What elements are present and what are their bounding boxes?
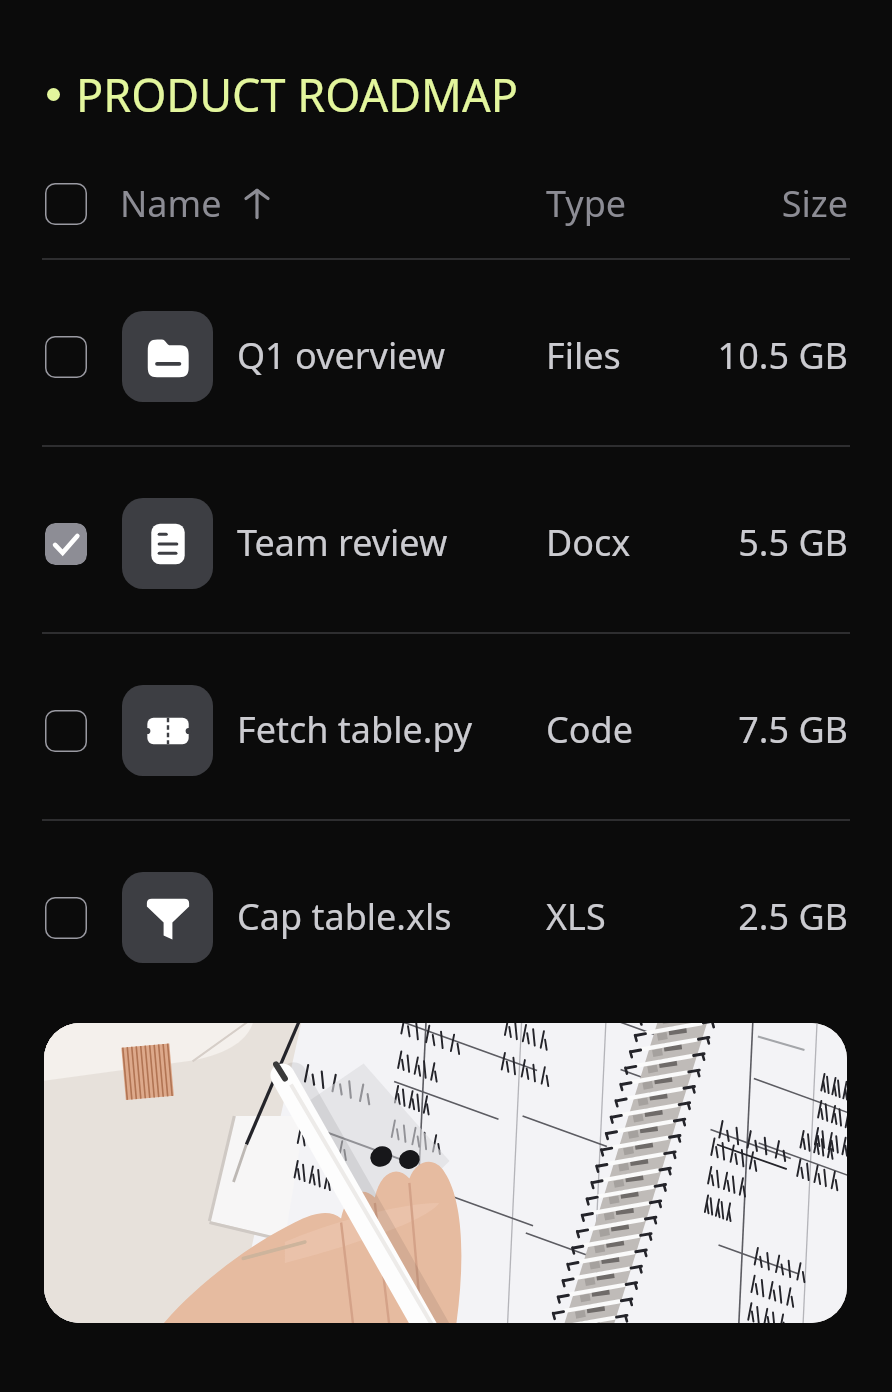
staticText: 7.5 GB bbox=[738, 705, 848, 754]
button[interactable]: Select bbox=[45, 897, 87, 939]
button[interactable]: Selected bbox=[45, 523, 87, 565]
button[interactable]: Size bbox=[781, 179, 848, 228]
button[interactable]: Select bbox=[0, 821, 892, 1006]
staticText: XLS bbox=[546, 892, 606, 941]
staticText: Docx bbox=[546, 518, 631, 567]
staticText: PRODUCT ROADMAP bbox=[76, 64, 518, 125]
staticText: 10.5 GB bbox=[717, 331, 848, 380]
button[interactable]: Select bbox=[0, 634, 892, 819]
button[interactable]: Select bbox=[45, 336, 87, 378]
staticText: Team review bbox=[237, 518, 448, 567]
staticText: Q1 overview bbox=[237, 331, 446, 380]
button[interactable]: Select bbox=[45, 183, 87, 225]
staticText: Name bbox=[120, 179, 222, 228]
staticText: Cap table.xls bbox=[237, 892, 452, 941]
button[interactable]: Select bbox=[0, 260, 892, 445]
button[interactable]: Selected bbox=[0, 447, 892, 632]
staticText: 5.5 GB bbox=[738, 518, 848, 567]
staticText: Fetch table.py bbox=[237, 705, 473, 754]
staticText: 2.5 GB bbox=[738, 892, 848, 941]
button[interactable]: Planner photo bbox=[44, 1023, 847, 1323]
button[interactable]: Type bbox=[546, 179, 627, 228]
button[interactable]: Name bbox=[120, 173, 274, 234]
staticText: Code bbox=[546, 705, 633, 754]
button[interactable]: Select bbox=[45, 710, 87, 752]
staticText: Files bbox=[546, 331, 621, 380]
